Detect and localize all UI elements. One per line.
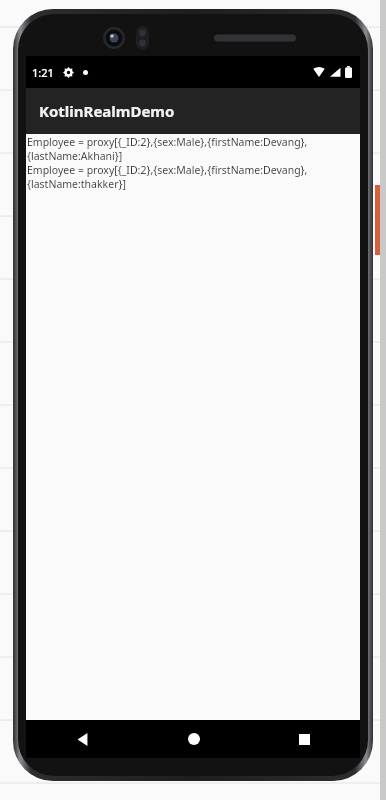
staticText: Employee = proxy[{_ID:2},{sex:Male},{fir…	[27, 135, 358, 191]
button[interactable]: Recent apps	[249, 720, 360, 758]
button[interactable]: KotlinRealmDemo	[26, 88, 360, 134]
button[interactable]: Back	[26, 720, 138, 758]
button[interactable]: Home	[138, 720, 249, 758]
staticText: 1:21	[32, 65, 54, 80]
staticText: KotlinRealmDemo	[39, 101, 175, 121]
